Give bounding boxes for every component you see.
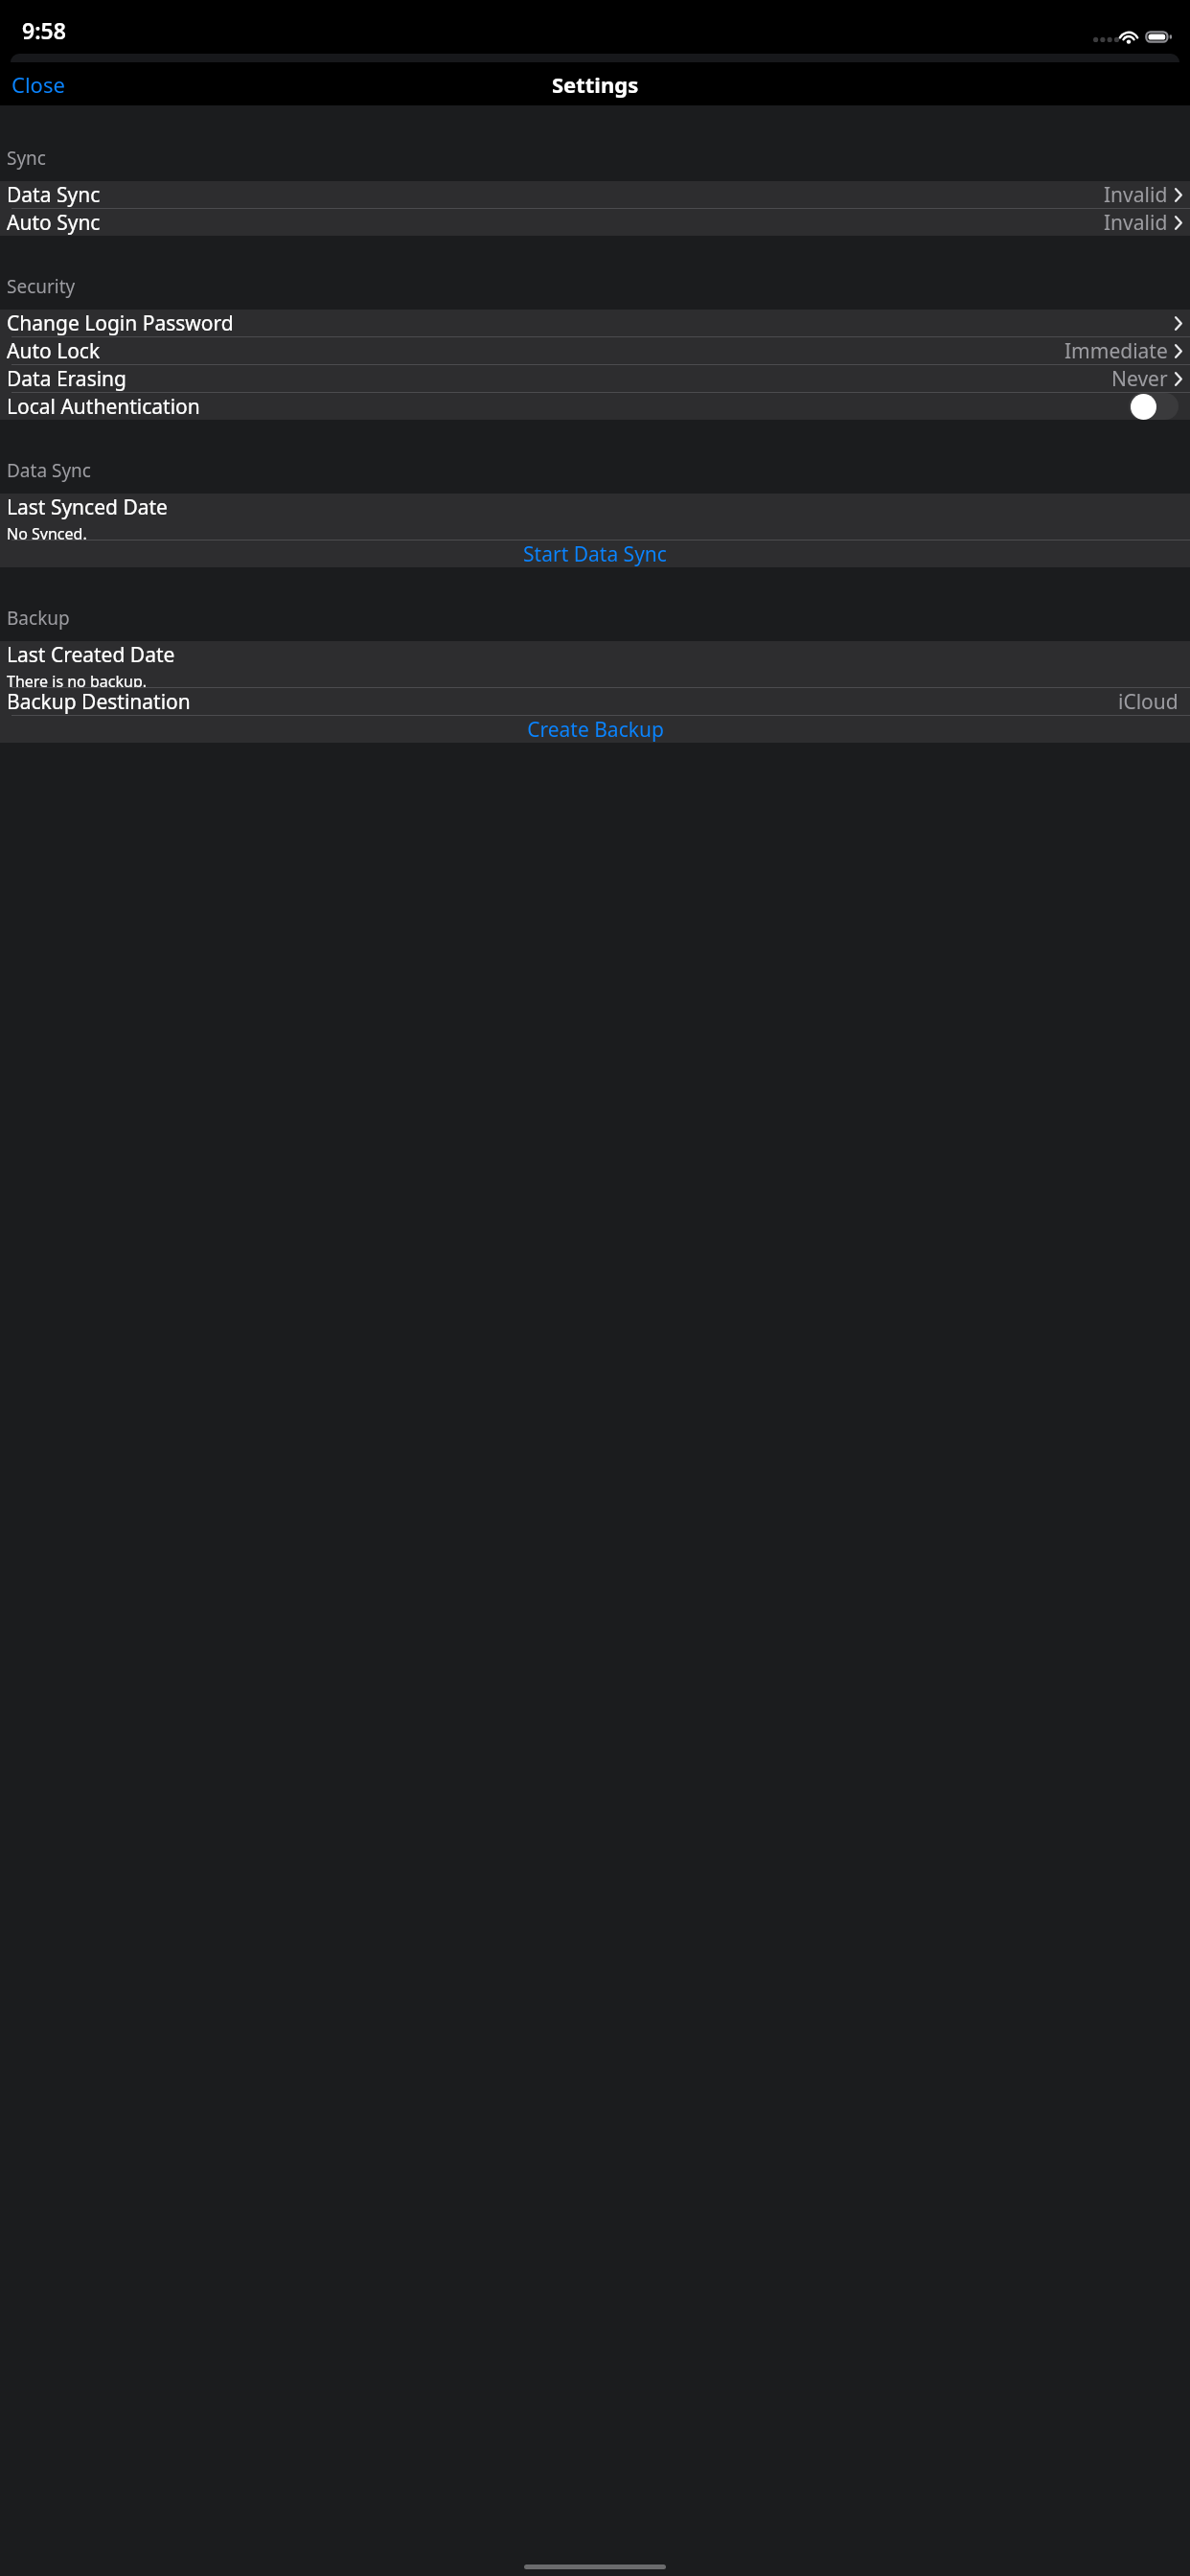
staticText: Backup Destination xyxy=(7,688,191,715)
button[interactable]: Local Authentication xyxy=(0,393,1190,420)
staticText: Security xyxy=(7,274,76,299)
staticText: Auto Lock xyxy=(7,337,101,364)
staticText: Change Login Password xyxy=(7,310,234,336)
staticText: Backup xyxy=(7,606,70,631)
other: Open xyxy=(1175,344,1182,358)
staticText: Auto Sync xyxy=(7,209,101,236)
staticText: There is no backup. xyxy=(7,671,148,687)
staticText: Settings xyxy=(552,70,639,99)
staticText: Immediate xyxy=(1064,337,1168,364)
staticText: Data Erasing xyxy=(7,365,127,392)
staticText: Sync xyxy=(7,146,46,171)
staticText: iCloud xyxy=(1118,688,1179,715)
staticText: 9:58 xyxy=(22,15,66,45)
button[interactable]: Change Login Password xyxy=(0,310,1190,336)
button[interactable]: Start Data Sync xyxy=(0,540,1190,567)
other: Open xyxy=(1175,372,1182,386)
staticText: Data Sync xyxy=(7,181,101,208)
button[interactable]: Data Sync xyxy=(0,181,1190,208)
button[interactable]: Last Synced Date xyxy=(0,494,1190,540)
staticText: Invalid xyxy=(1104,181,1168,208)
staticText: Local Authentication xyxy=(7,393,200,420)
button[interactable]: Data Erasing xyxy=(0,365,1190,392)
button[interactable]: Create Backup xyxy=(0,716,1190,743)
button[interactable]: Auto Lock xyxy=(0,337,1190,364)
staticText: No Synced. xyxy=(7,523,87,540)
staticText: Start Data Sync xyxy=(523,540,667,567)
staticText: Data Sync xyxy=(7,458,91,483)
other: Open xyxy=(1175,216,1182,230)
button[interactable]: Last Created Date xyxy=(0,641,1190,687)
other: Open xyxy=(1175,188,1182,202)
other: Open xyxy=(1175,316,1182,331)
staticText: Create Backup xyxy=(527,716,664,743)
button[interactable]: Backup Destination xyxy=(0,688,1190,715)
staticText: Close xyxy=(11,70,65,99)
staticText: Last Synced Date xyxy=(7,494,168,521)
staticText: Invalid xyxy=(1104,209,1168,236)
button[interactable]: Close xyxy=(0,64,77,104)
button[interactable]: Auto Sync xyxy=(0,209,1190,236)
staticText: Never xyxy=(1111,365,1168,392)
staticText: Last Created Date xyxy=(7,641,175,669)
